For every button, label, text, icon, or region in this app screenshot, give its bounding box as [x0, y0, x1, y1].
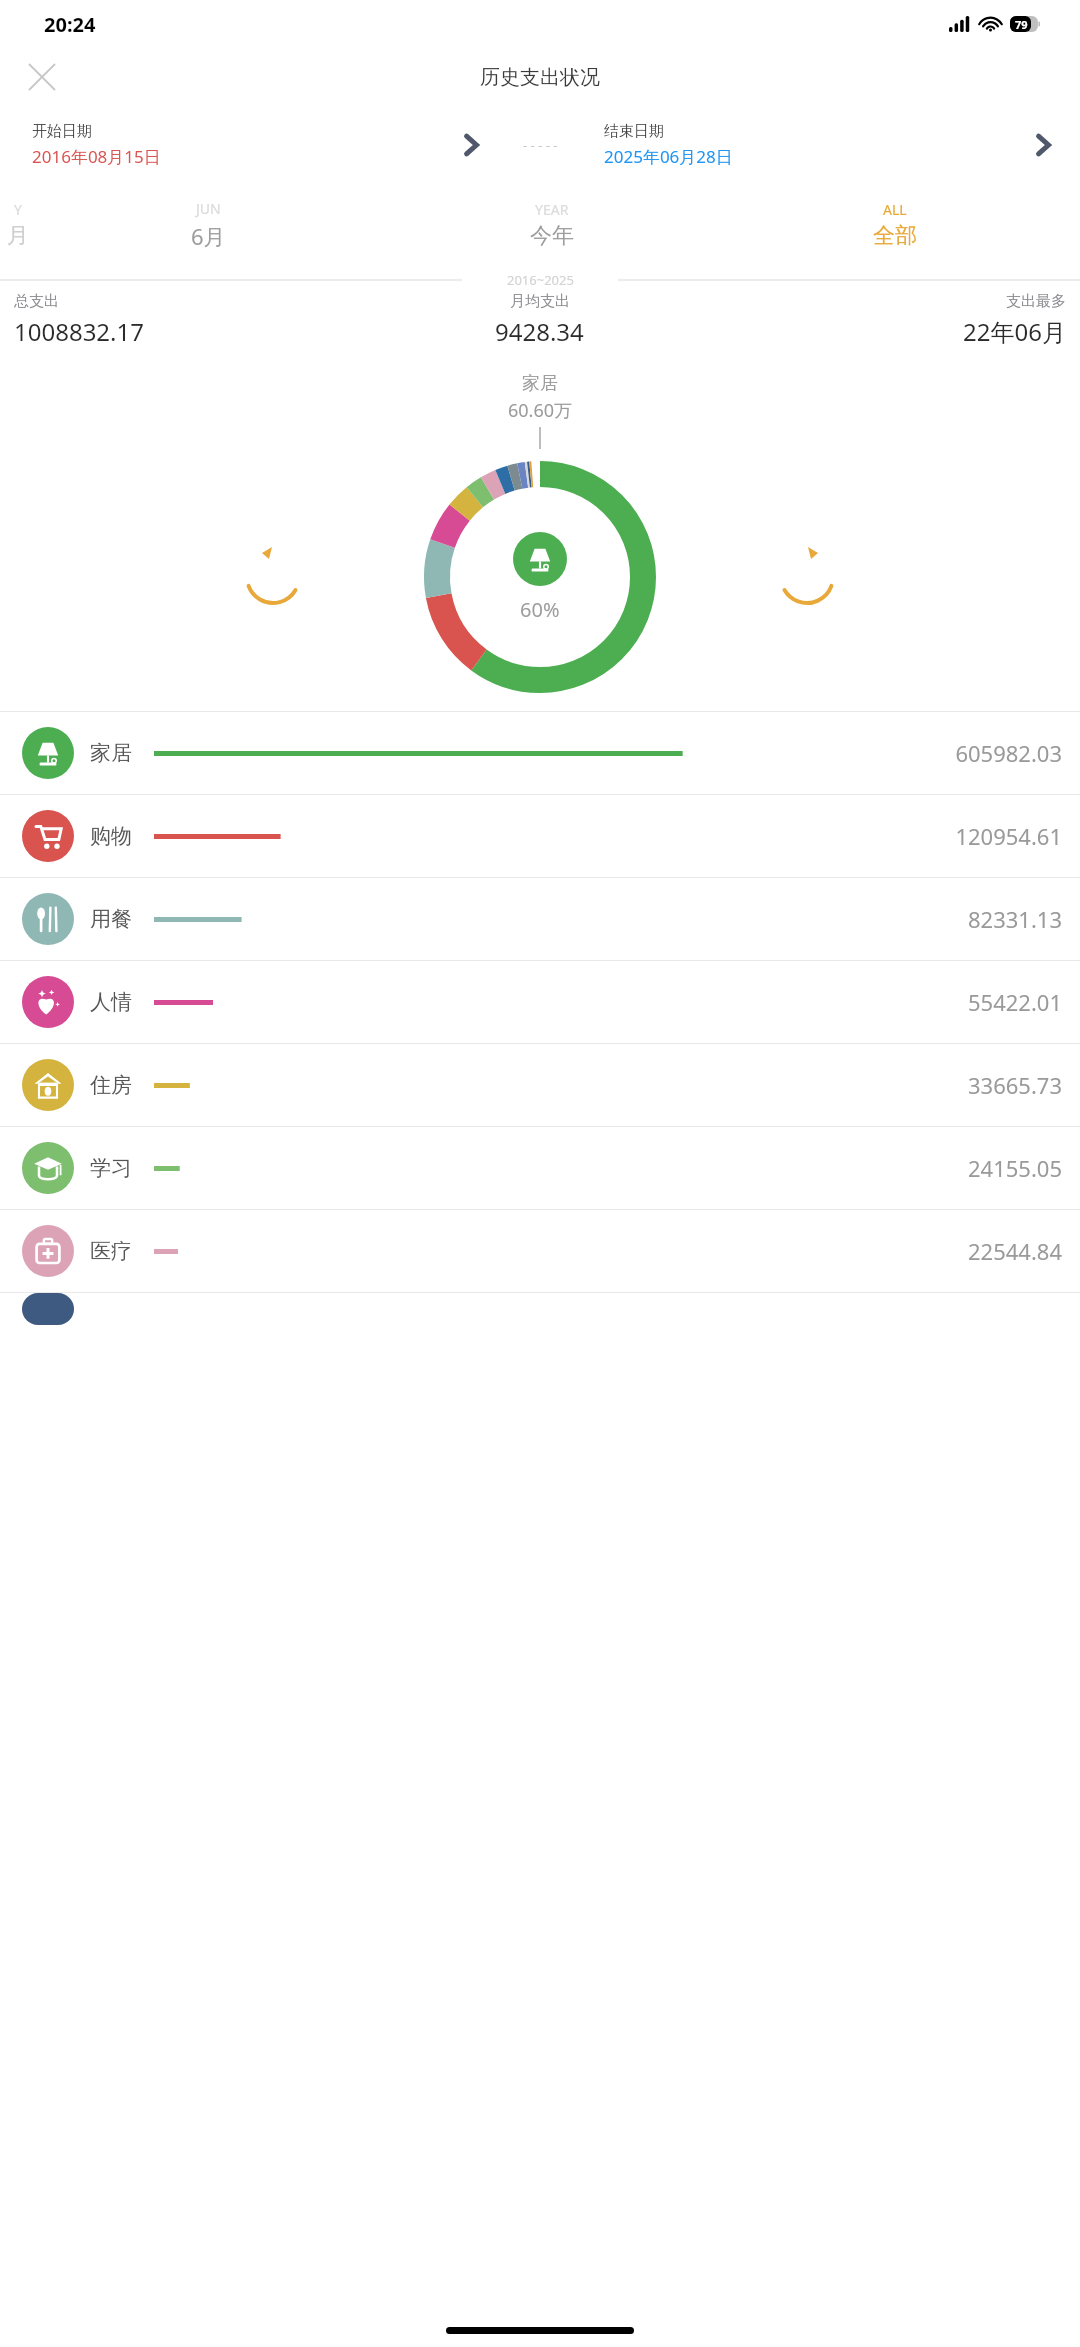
staticText: 79 [1015, 17, 1028, 32]
staticText: 购物 [90, 823, 132, 849]
staticText: 支出最多 [1006, 292, 1066, 311]
staticText: YEAR [535, 200, 569, 219]
staticText: 60% [520, 596, 560, 623]
staticText: ALL [883, 200, 907, 219]
button[interactable]: 结束日期 [588, 106, 1064, 184]
staticText: 家居 [90, 740, 132, 766]
button[interactable]: 用餐 [0, 878, 1080, 960]
button[interactable]: 住房 [0, 1044, 1080, 1126]
staticText: 学习 [90, 1155, 132, 1181]
button[interactable]: YEAR [380, 200, 723, 250]
staticText: 人情 [90, 989, 132, 1015]
staticText: 家居 [522, 372, 558, 395]
staticText: 医疗 [90, 1238, 132, 1264]
button[interactable]: 购物 [0, 795, 1080, 877]
staticText: 月 [7, 222, 29, 250]
button[interactable]: 人情 [0, 961, 1080, 1043]
staticText: 总支出 [14, 292, 59, 311]
button[interactable]: 家居 [0, 712, 1080, 794]
staticText: 月均支出 [510, 292, 570, 311]
staticText: 住房 [90, 1072, 132, 1098]
button[interactable]: 开始日期 [16, 106, 492, 184]
staticText: 60.60万 [508, 398, 573, 423]
staticText: Y [14, 200, 22, 219]
staticText: 今年 [530, 222, 574, 250]
staticText: 用餐 [90, 906, 132, 932]
staticText: 22544.84 [968, 1236, 1062, 1266]
button[interactable]: Close [18, 53, 66, 101]
button[interactable]: ALL [723, 200, 1066, 250]
staticText: 33665.73 [968, 1070, 1062, 1100]
staticText: 22年06月 [963, 315, 1066, 348]
staticText: 2016年08月15日 [32, 145, 161, 168]
button[interactable]: 医疗 [0, 1210, 1080, 1292]
staticText: 82331.13 [968, 904, 1062, 934]
staticText: 2025年06月28日 [604, 145, 733, 168]
button[interactable]: JUN [36, 199, 380, 251]
staticText: 20:24 [44, 11, 96, 38]
staticText: 1008832.17 [14, 315, 144, 348]
staticText: 结束日期 [604, 122, 664, 141]
staticText: 历史支出状况 [480, 65, 600, 90]
staticText: 55422.01 [968, 987, 1062, 1017]
staticText: 120954.61 [955, 821, 1062, 851]
staticText: 全部 [873, 222, 917, 250]
button[interactable]: 学习 [0, 1127, 1080, 1209]
staticText: 6月 [191, 221, 226, 251]
staticText: 24155.05 [968, 1153, 1062, 1183]
staticText: 9428.34 [495, 315, 584, 348]
staticText: 开始日期 [32, 122, 92, 141]
staticText: - - - - - [523, 136, 558, 154]
staticText: JUN [196, 199, 221, 218]
staticText: 605982.03 [955, 738, 1062, 768]
staticText: 2016~2025 [507, 271, 574, 289]
